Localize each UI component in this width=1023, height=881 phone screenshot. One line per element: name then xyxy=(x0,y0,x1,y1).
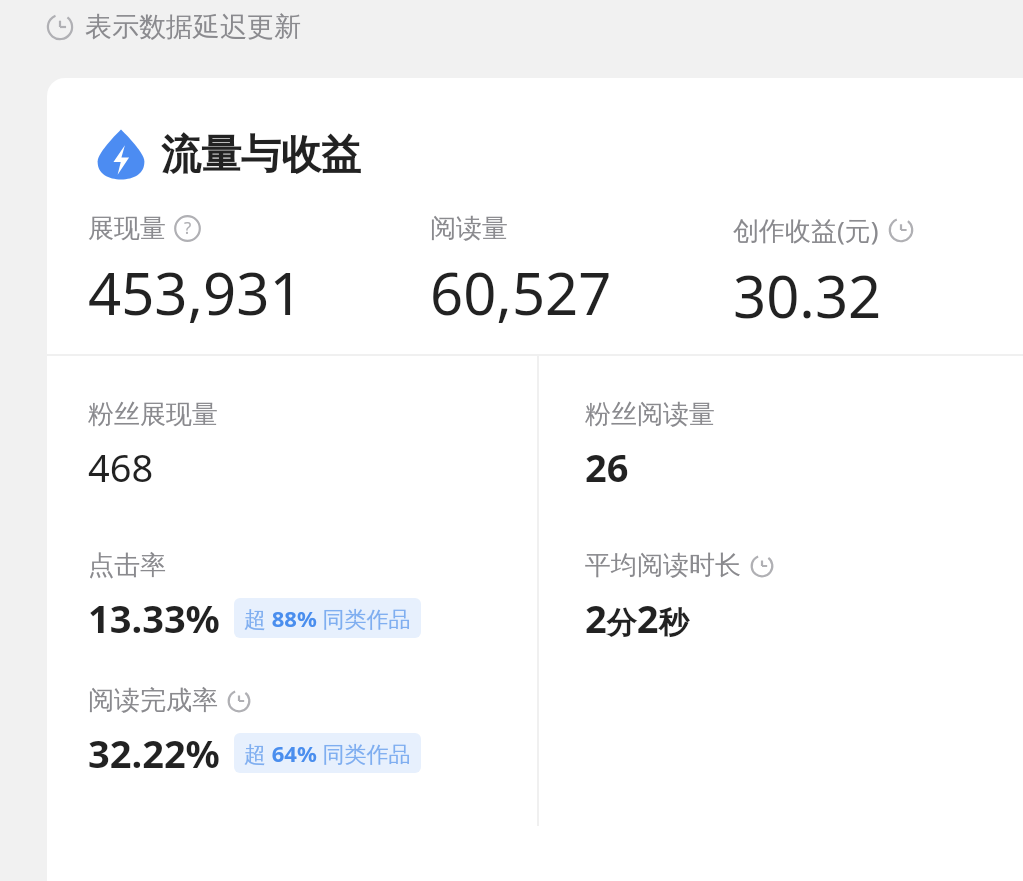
staticText: 32.22% xyxy=(88,727,220,779)
button[interactable]: 超 88% 同类作品 xyxy=(234,598,421,638)
staticText: 粉丝阅读量 xyxy=(585,398,715,431)
staticText: 阅读量 xyxy=(430,212,508,245)
staticText: 超 88% 同类作品 xyxy=(244,603,411,633)
other: 流量与收益 xyxy=(95,128,147,180)
staticText: 30.32 xyxy=(733,256,882,335)
staticText: 2分2秒 xyxy=(585,592,689,644)
staticText: 点击率 xyxy=(88,549,166,582)
staticText: 粉丝展现量 xyxy=(88,398,218,431)
staticText: 超 64% 同类作品 xyxy=(244,738,411,768)
staticText: 平均阅读时长 xyxy=(585,549,741,582)
button[interactable]: 阅读完成率 xyxy=(88,684,421,779)
staticText: 展现量 xyxy=(88,212,166,245)
button[interactable]: 展现量 xyxy=(88,212,303,332)
staticText: 创作收益(元) xyxy=(733,212,879,248)
staticText: ? xyxy=(184,216,192,239)
staticText: 流量与收益 xyxy=(161,129,361,179)
button[interactable]: 阅读量 xyxy=(430,212,612,332)
staticText: 468 xyxy=(88,441,154,493)
button[interactable]: 粉丝阅读量 xyxy=(585,398,715,493)
staticText: 表示数据延迟更新 xyxy=(85,10,301,44)
button[interactable]: 平均阅读时长 xyxy=(585,549,775,644)
staticText: 13.33% xyxy=(88,592,220,644)
staticText: 60,527 xyxy=(430,253,612,332)
button[interactable]: 创作收益(元) xyxy=(733,212,915,335)
button[interactable]: 粉丝展现量 xyxy=(88,398,218,493)
button[interactable]: 超 64% 同类作品 xyxy=(234,733,421,773)
staticText: 453,931 xyxy=(88,253,303,332)
staticText: 26 xyxy=(585,441,629,493)
button[interactable]: 点击率 xyxy=(88,549,421,644)
staticText: 阅读完成率 xyxy=(88,684,218,717)
